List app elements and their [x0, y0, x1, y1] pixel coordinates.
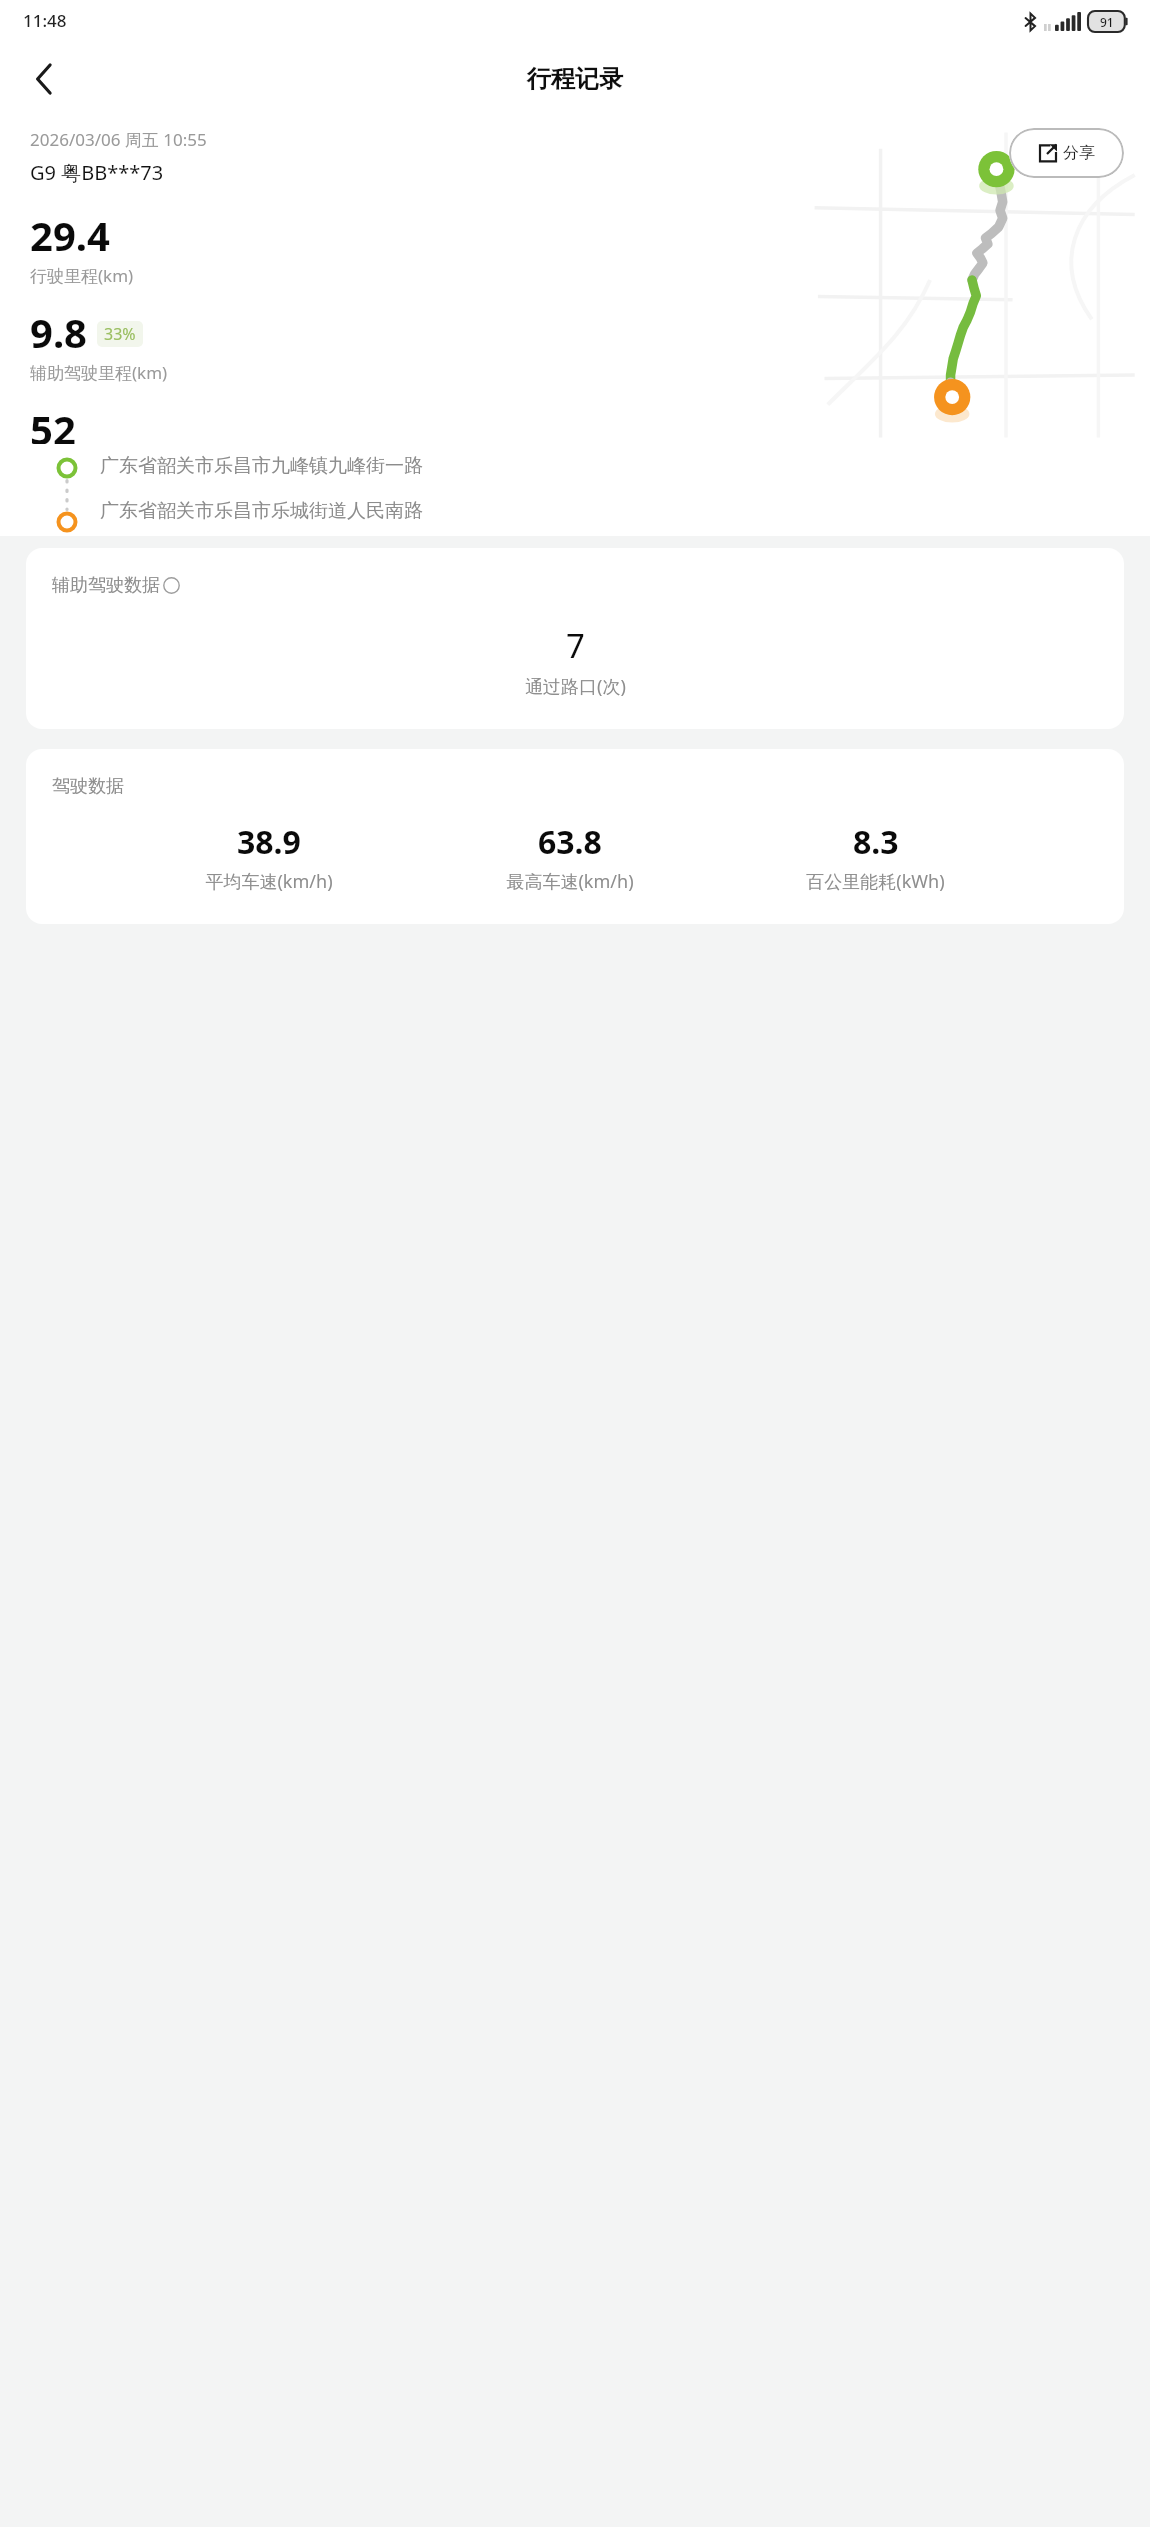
staticText: 8.3: [853, 820, 899, 864]
staticText: 7: [566, 623, 585, 668]
staticText: 33%: [104, 323, 136, 345]
button[interactable]: 辅助驾驶数据: [26, 548, 1124, 729]
button[interactable]: 分享: [1009, 128, 1124, 178]
staticText: 平均车速(km/h): [205, 869, 333, 894]
staticText: 辅助驾驶里程(km): [30, 361, 168, 384]
staticText: 38.9: [237, 820, 301, 864]
staticText: 广东省韶关市乐昌市乐城街道人民南路: [100, 499, 423, 523]
staticText: 广东省韶关市乐昌市九峰镇九峰街一路: [100, 454, 423, 478]
button[interactable]: Back: [14, 49, 74, 109]
staticText: 行驶里程(km): [30, 264, 134, 287]
staticText: 11:48: [23, 9, 67, 32]
staticText: 行程记录: [527, 64, 623, 94]
staticText: 2026/03/06 周五 10:55: [30, 128, 207, 151]
staticText: 驾驶数据: [52, 775, 124, 798]
staticText: G9 粤BB***73: [30, 159, 164, 186]
staticText: 辅助驾驶数据: [52, 574, 160, 597]
staticText: 91: [1100, 14, 1114, 30]
staticText: 通过路口(次): [525, 674, 626, 699]
staticText: 52: [30, 402, 76, 444]
staticText: 最高车速(km/h): [506, 869, 634, 894]
staticText: 63.8: [538, 820, 602, 864]
staticText: 百公里能耗(kWh): [806, 869, 945, 894]
button[interactable]: 驾驶数据: [26, 749, 1124, 924]
staticText: 29.4: [30, 208, 110, 262]
staticText: 分享: [1063, 143, 1095, 163]
staticText: 9.8: [30, 305, 87, 359]
